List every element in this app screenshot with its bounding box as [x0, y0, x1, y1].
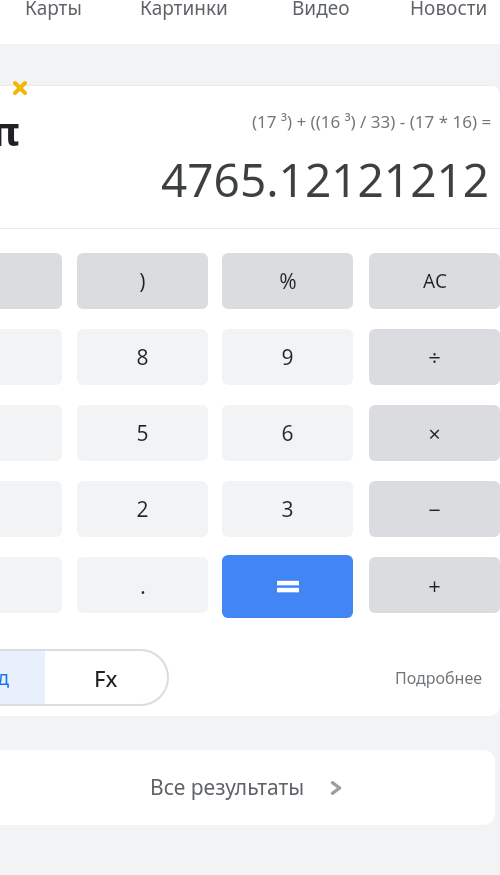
button[interactable]: Все результаты	[0, 750, 495, 825]
staticText: .	[140, 570, 146, 600]
staticText: 4765.12121212	[161, 148, 490, 211]
button[interactable]: %	[222, 253, 353, 309]
staticText: +	[428, 570, 441, 600]
button[interactable]: 3	[222, 481, 353, 537]
button[interactable]: Картинки	[140, 0, 228, 25]
button[interactable]: +	[369, 557, 500, 613]
staticText: )	[139, 267, 146, 296]
button[interactable]: Карты	[25, 0, 82, 25]
staticText: 6	[281, 419, 294, 448]
button[interactable]: ÷	[369, 329, 500, 385]
button[interactable]: Подробнее	[395, 662, 483, 694]
button[interactable]: Fx	[45, 650, 167, 705]
staticText: (17 ³) + ((16 ³) / 33) - (17 * 16) =	[252, 110, 492, 133]
staticText: −	[428, 494, 441, 524]
staticText: 3	[281, 495, 294, 524]
staticText: Карты	[25, 0, 82, 21]
staticText: AC	[423, 268, 447, 294]
staticText: 5	[136, 419, 149, 448]
staticText: Новости	[410, 0, 488, 21]
staticText: Подробнее	[395, 667, 483, 689]
button[interactable]: 6	[222, 405, 353, 461]
button[interactable]: Новости	[410, 0, 488, 25]
button[interactable]: 8	[77, 329, 208, 385]
button[interactable]: 9	[222, 329, 353, 385]
button[interactable]: Radians	[0, 650, 45, 705]
staticText: 9	[281, 343, 294, 372]
button[interactable]: 2	[77, 481, 208, 537]
staticText: π	[0, 103, 20, 157]
button[interactable]: Equals	[222, 555, 353, 618]
staticText: ×	[428, 418, 441, 448]
staticText: 8	[136, 343, 149, 372]
staticText: %	[279, 267, 297, 296]
staticText: Видео	[292, 0, 350, 21]
staticText: ÷	[428, 342, 441, 372]
button[interactable]: 5	[77, 405, 208, 461]
button[interactable]: ×	[369, 405, 500, 461]
button[interactable]: )	[77, 253, 208, 309]
button[interactable]: .	[77, 557, 208, 613]
staticText: Fx	[94, 663, 118, 693]
button[interactable]: AC	[369, 253, 500, 309]
button[interactable]: Видео	[292, 0, 350, 25]
staticText: Рад	[0, 665, 10, 691]
staticText: 2	[136, 495, 149, 524]
staticText: Все результаты	[150, 773, 305, 802]
staticText: Картинки	[140, 0, 228, 21]
button[interactable]: −	[369, 481, 500, 537]
